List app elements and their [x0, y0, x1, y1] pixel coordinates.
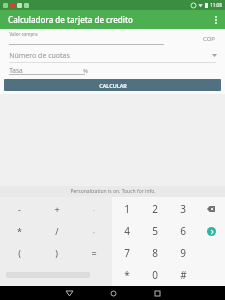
staticText: Personalization is on. Touch for info.: [70, 188, 156, 195]
button[interactable]: *: [0, 220, 38, 242]
button[interactable]: More options: [207, 10, 225, 29]
staticText: Número de cuotas: [9, 51, 70, 61]
staticText: *: [17, 225, 22, 237]
button[interactable]: 5: [141, 220, 169, 242]
button[interactable]: =: [75, 242, 112, 264]
button[interactable]: Home: [91, 286, 135, 300]
button[interactable]: Tasa: [0, 63, 225, 77]
staticText: 4: [124, 224, 130, 238]
staticText: 1: [124, 202, 130, 216]
button[interactable]: 2: [141, 197, 169, 220]
button[interactable]: -: [0, 197, 38, 220]
button[interactable]: Back: [47, 286, 91, 300]
button[interactable]: Backspace: [207, 206, 215, 212]
staticText: Tasa: [9, 66, 23, 75]
button[interactable]: 8: [141, 242, 169, 264]
staticText: -: [18, 203, 21, 215]
staticText: Valor compra: [9, 31, 38, 37]
staticText: Calculadora de tarjeta de credito: [8, 14, 133, 25]
button[interactable]: CALCULAR: [4, 79, 221, 91]
staticText: CALCULAR: [99, 82, 127, 89]
staticText: #: [180, 268, 187, 282]
staticText: 3: [180, 202, 186, 216]
button[interactable]: 7: [112, 242, 141, 264]
staticText: 9: [180, 246, 186, 260]
button[interactable]: Enter: [207, 227, 216, 236]
staticText: COP: [203, 35, 215, 43]
button[interactable]: +: [38, 197, 75, 220]
staticText: *: [124, 268, 130, 282]
button[interactable]: Personalization is on. Touch for info.: [0, 186, 225, 197]
staticText: 7: [124, 246, 130, 260]
staticText: (: [18, 247, 21, 259]
staticText: 5: [152, 224, 158, 238]
button[interactable]: *: [112, 264, 141, 286]
button[interactable]: 9: [169, 242, 197, 264]
staticText: /: [55, 225, 59, 237]
staticText: ,: [93, 227, 95, 235]
button[interactable]: 1: [112, 197, 141, 220]
staticText: 2: [152, 202, 158, 216]
staticText: ): [55, 247, 58, 259]
staticText: 11:08: [210, 2, 222, 8]
button[interactable]: Valor compra: [0, 29, 225, 48]
button[interactable]: 0: [141, 264, 169, 286]
button[interactable]: #: [169, 264, 197, 286]
button[interactable]: 4: [112, 220, 141, 242]
button[interactable]: Número de cuotas: [0, 48, 225, 63]
button[interactable]: 6: [169, 220, 197, 242]
staticText: 6: [180, 224, 186, 238]
button[interactable]: ): [38, 242, 75, 264]
staticText: +: [54, 203, 60, 215]
button[interactable]: Recents: [135, 286, 179, 300]
button[interactable]: (: [0, 242, 38, 264]
staticText: =: [91, 247, 97, 259]
staticText: %: [83, 67, 88, 74]
staticText: 8: [152, 246, 158, 260]
staticText: .: [93, 205, 95, 213]
button[interactable]: 3: [169, 197, 197, 220]
staticText: 0: [152, 268, 158, 282]
button[interactable]: /: [38, 220, 75, 242]
other: Dropdown: [212, 54, 217, 57]
